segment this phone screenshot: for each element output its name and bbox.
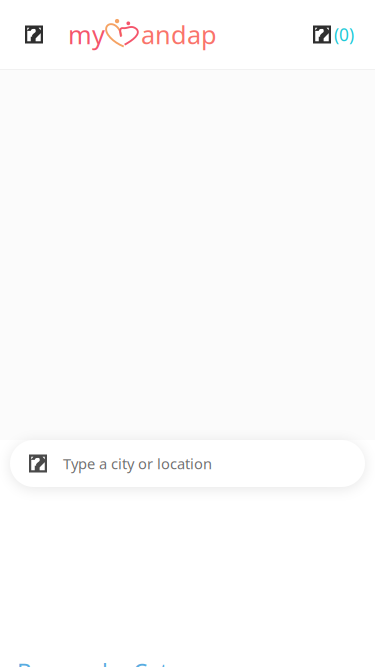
staticText: andap (141, 18, 217, 51)
staticText: (0) (334, 23, 354, 46)
staticText: Browse by Category (17, 657, 230, 667)
staticText: Type a city or location (63, 454, 212, 473)
button[interactable]: Menu (0, 0, 68, 69)
staticText: my (68, 18, 105, 51)
button[interactable]: Shortlist, 0 saved (313, 0, 375, 69)
button[interactable]: Type a city or location (10, 440, 365, 487)
